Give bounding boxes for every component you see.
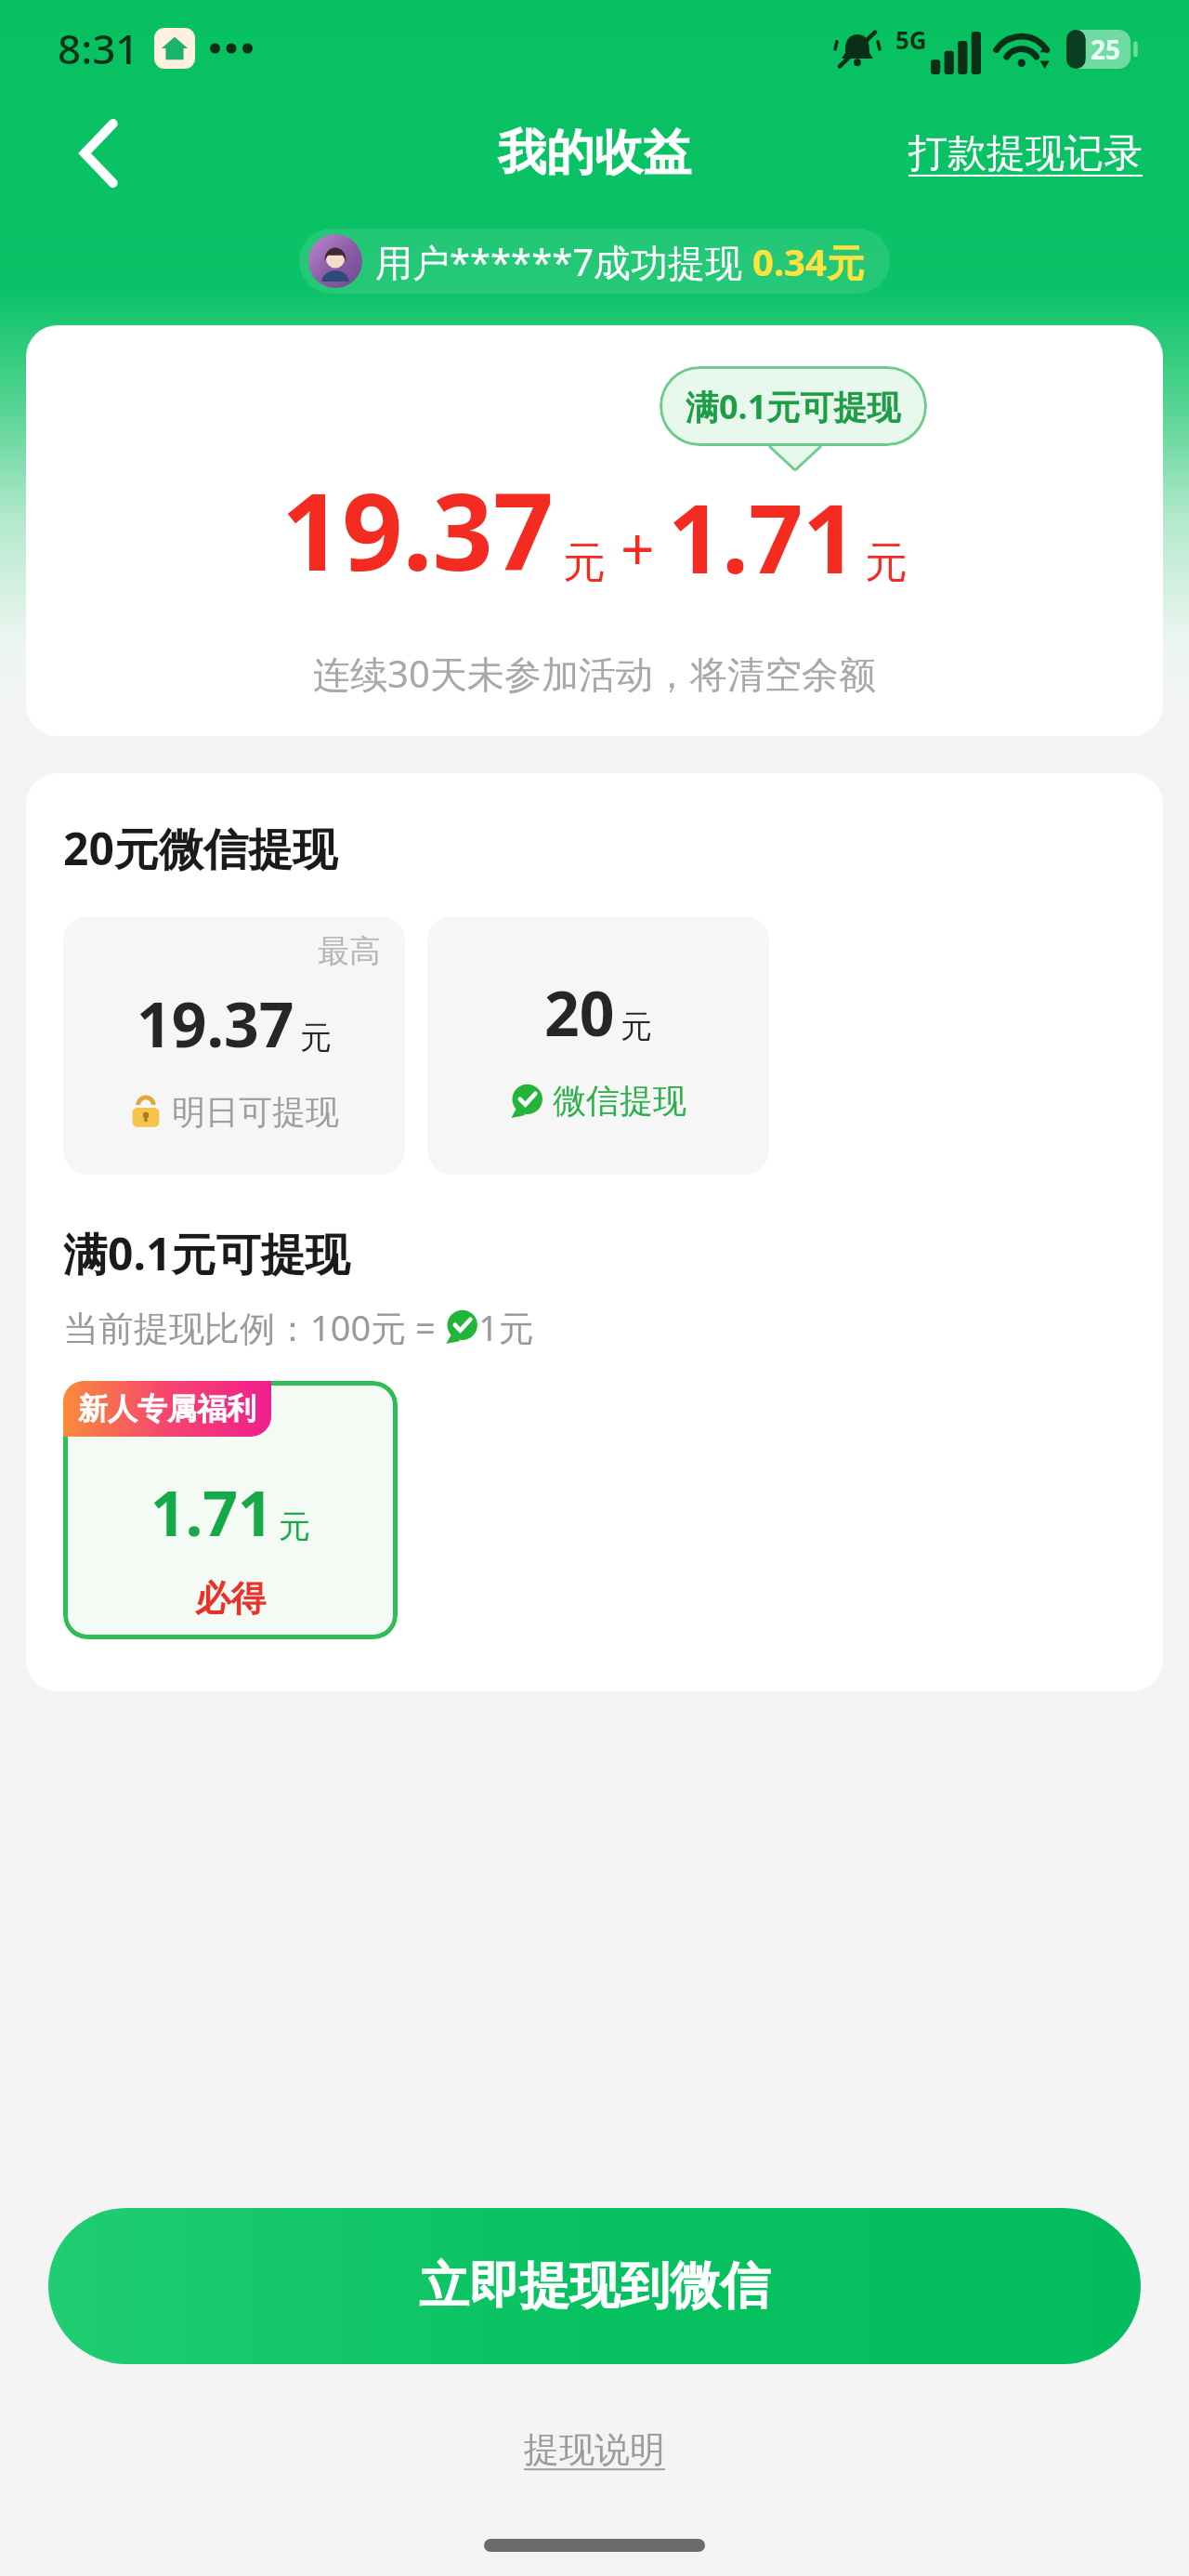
staticText: 0.34元 <box>752 236 864 287</box>
staticText: 用户******7成功提现 <box>375 236 752 287</box>
button[interactable]: 20 <box>427 916 769 1175</box>
staticText: 元 <box>621 1006 652 1046</box>
staticText: 19.37 <box>137 981 294 1065</box>
staticText: 元 <box>865 536 908 590</box>
staticText: 20元微信提现 <box>63 818 337 879</box>
staticText: 8:31 <box>58 20 139 76</box>
staticText: 最高 <box>318 931 381 971</box>
button[interactable]: 提现说明 <box>505 2420 684 2479</box>
staticText: 满0.1元可提现 <box>686 384 901 429</box>
staticText: 20 <box>544 970 615 1054</box>
button[interactable]: 最高 <box>63 916 405 1175</box>
staticText: 1.71 <box>150 1470 273 1554</box>
staticText: 我的收益 <box>498 123 691 184</box>
staticText: 1.71 <box>668 472 857 601</box>
staticText: 满0.1元可提现 <box>63 1223 350 1284</box>
staticText: 当前提现比例：100元 = <box>63 1303 445 1351</box>
button[interactable]: 立即提现到微信 <box>48 2208 1141 2364</box>
staticText: 打款提现记录 <box>908 129 1143 178</box>
staticText: 立即提现到微信 <box>419 2254 770 2318</box>
button[interactable]: Back <box>58 112 141 195</box>
button[interactable]: 打款提现记录 <box>903 122 1148 186</box>
staticText: 1元 <box>478 1303 534 1351</box>
staticText: 必得 <box>195 1576 266 1621</box>
button[interactable]: 1.71 <box>63 1381 398 1639</box>
staticText: 5G <box>895 23 927 56</box>
staticText: 提现说明 <box>524 2427 665 2472</box>
staticText: 明日可提现 <box>172 1091 339 1133</box>
staticText: 新人专属福利 <box>78 1390 256 1427</box>
staticText: + <box>621 507 655 588</box>
staticText: 元 <box>279 1506 310 1546</box>
staticText: 元 <box>300 1018 332 1058</box>
staticText: 连续30天未参加活动，将清空余额 <box>26 648 1163 699</box>
staticText: 微信提现 <box>553 1080 686 1122</box>
staticText: 元 <box>563 536 606 590</box>
staticText: 25 <box>1091 32 1121 67</box>
staticText: 19.37 <box>281 457 554 601</box>
